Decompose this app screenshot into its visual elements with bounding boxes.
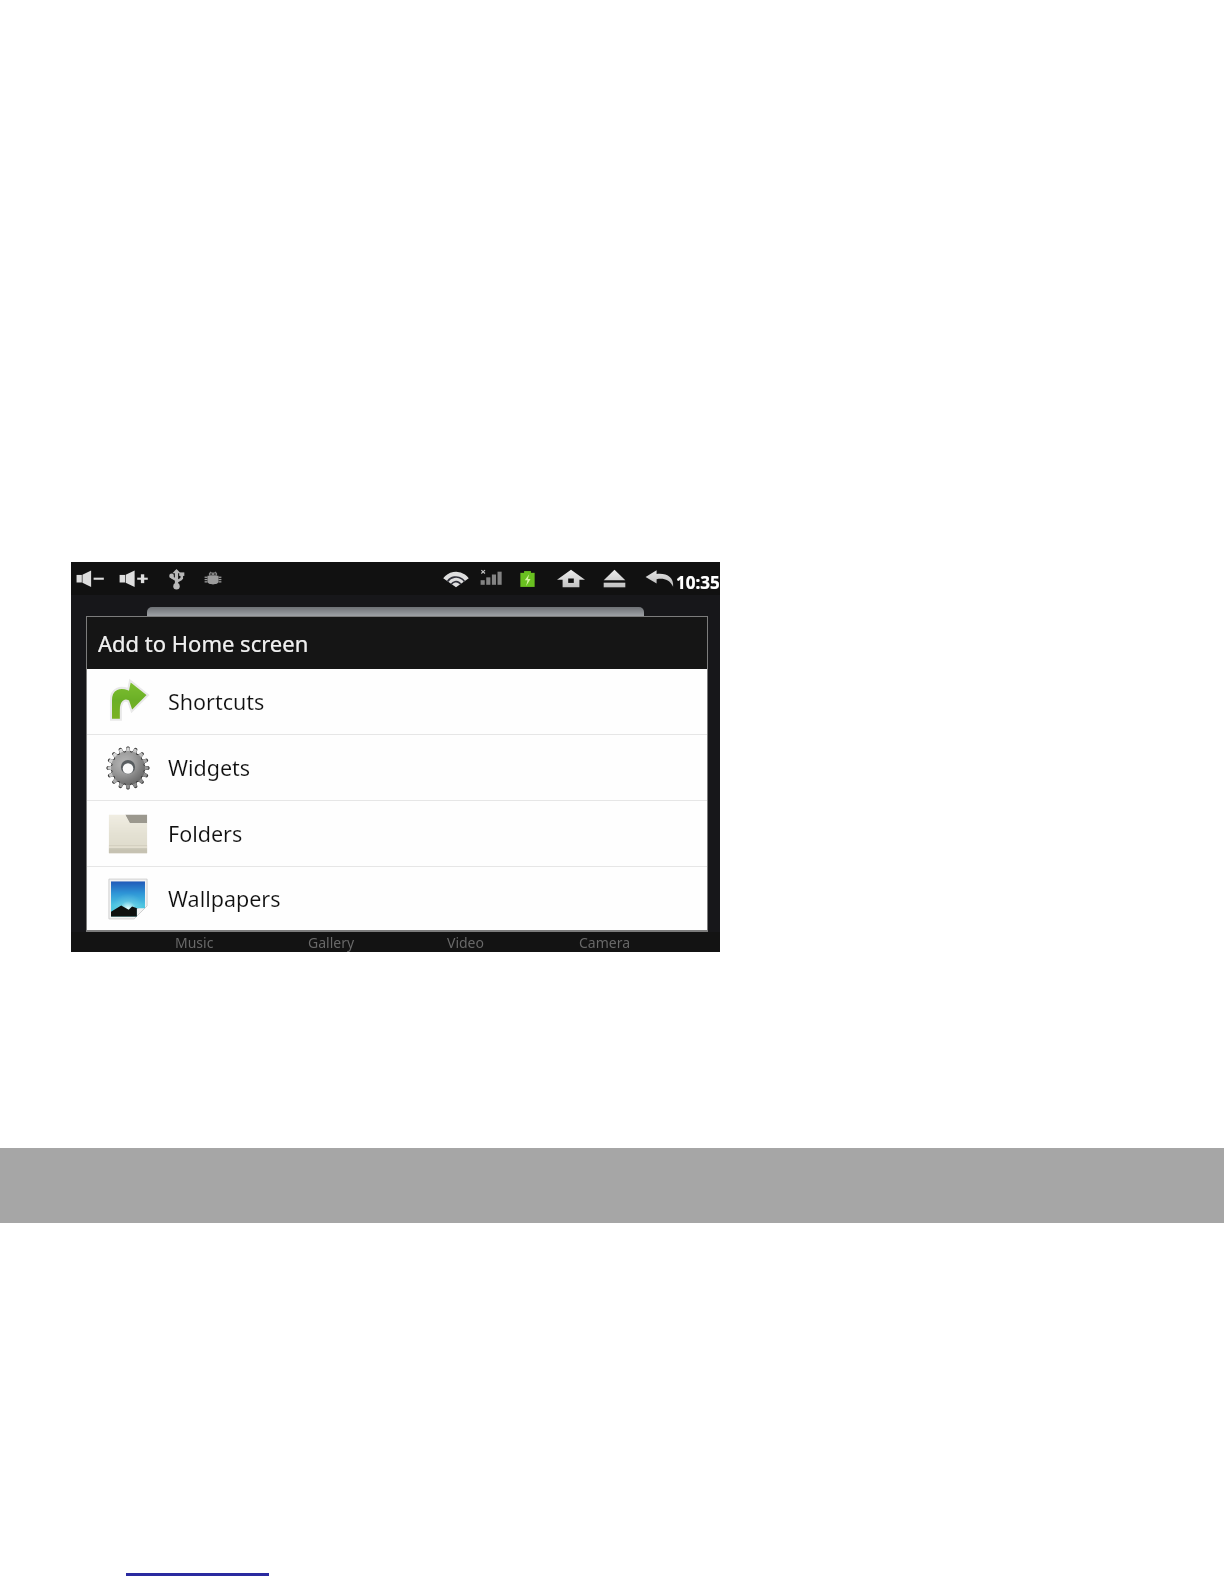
staticText: Shortcuts [168, 687, 265, 716]
button[interactable]: Volume down [75, 568, 106, 589]
staticText: Wallpapers [168, 884, 281, 913]
button[interactable]: Battery charging [519, 568, 536, 590]
button[interactable]: Camera [569, 932, 641, 952]
button[interactable]: Wallpapers [87, 867, 707, 930]
button[interactable]: Back [645, 569, 674, 588]
button[interactable]: Signal [479, 568, 502, 589]
button[interactable]: USB connected [168, 568, 185, 590]
button[interactable]: USB debugging [201, 568, 225, 589]
staticText: Camera [579, 933, 631, 952]
staticText: Gallery [308, 933, 355, 952]
button[interactable]: Volume up [118, 568, 150, 589]
button[interactable]: Widgets [87, 735, 707, 800]
staticText: 10:35 [676, 571, 720, 594]
button[interactable]: Gallery [295, 932, 367, 952]
button[interactable]: Folders [87, 801, 707, 866]
button[interactable]: 10:35 [676, 569, 720, 595]
staticText: Add to Home screen [98, 628, 309, 658]
staticText: Music [175, 933, 214, 952]
button[interactable]: Video [429, 932, 501, 952]
button[interactable]: Shortcuts [87, 669, 707, 734]
staticText: Video [447, 933, 484, 952]
staticText: Widgets [168, 753, 251, 782]
button[interactable]: Eject [603, 568, 626, 589]
button[interactable]: Home [557, 568, 585, 589]
button[interactable]: Wi-Fi [441, 568, 471, 589]
button[interactable]: Music [158, 932, 230, 952]
staticText: Folders [168, 819, 243, 848]
